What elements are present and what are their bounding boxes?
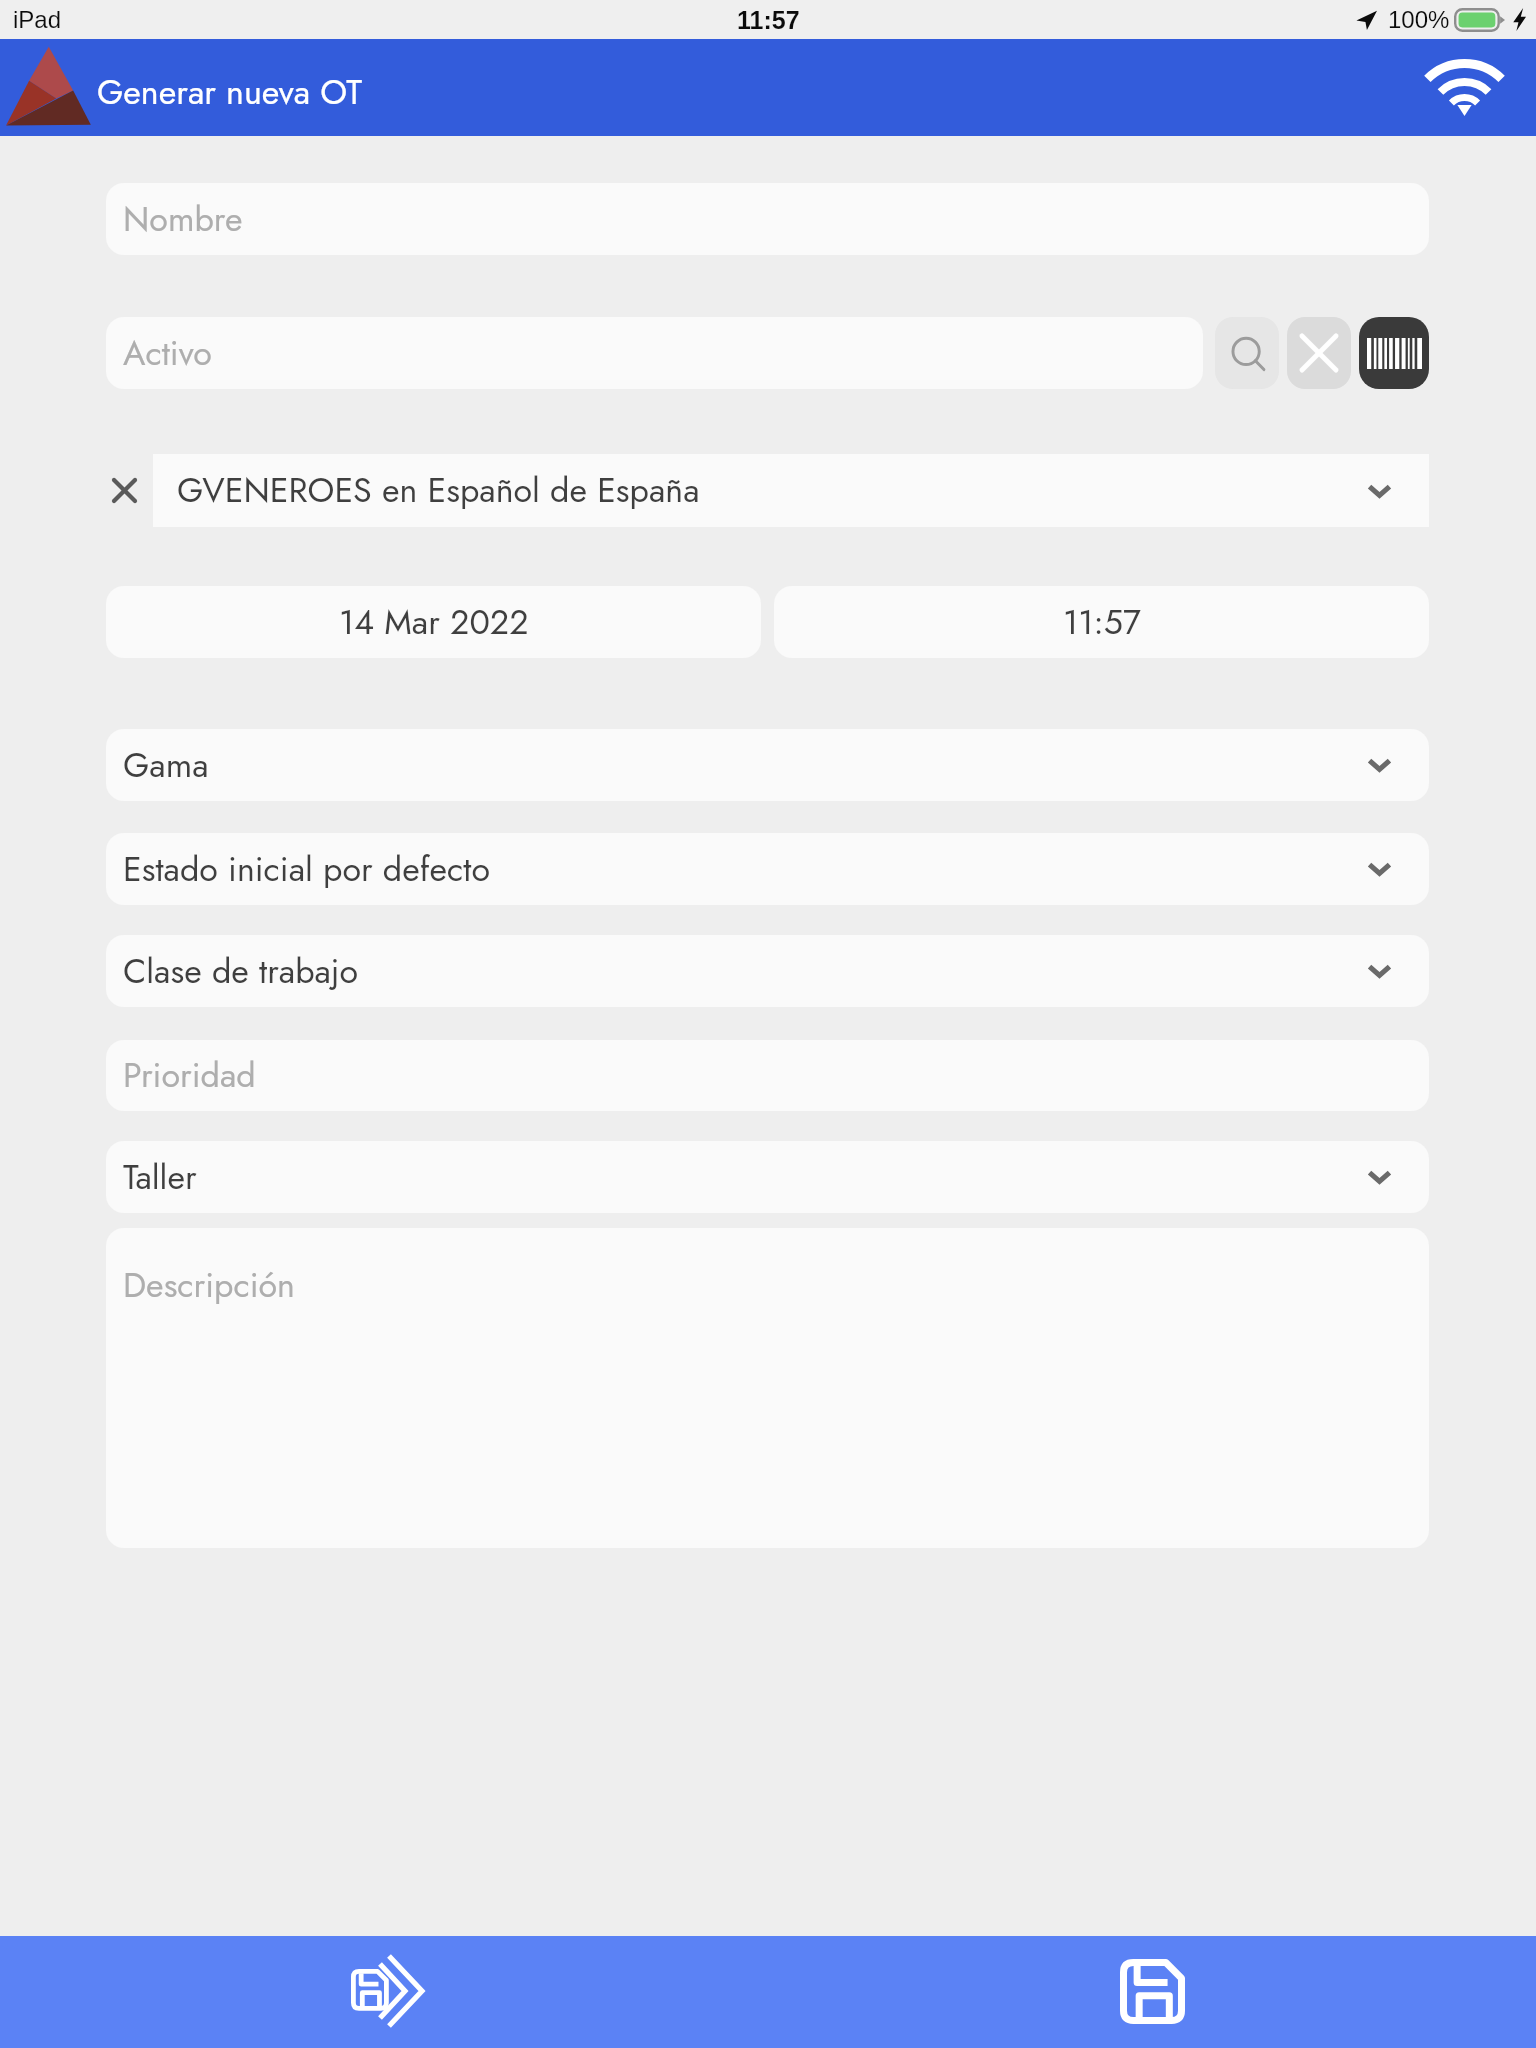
staticText: Activo [123, 329, 212, 378]
button[interactable]: 14 Mar 2022 [106, 586, 761, 658]
button[interactable]: Descripción [106, 1228, 1429, 1548]
staticText: Clase de trabajo [123, 947, 358, 996]
button[interactable]: Taller [106, 1141, 1429, 1213]
button[interactable]: Activo [106, 317, 1203, 389]
button[interactable]: Prioridad [106, 1040, 1429, 1111]
button[interactable]: Gama [106, 729, 1429, 801]
button[interactable]: 11:57 [774, 586, 1429, 658]
staticText: Prioridad [123, 1051, 256, 1100]
button[interactable]: Guardar y continuar [337, 1942, 437, 2042]
staticText: GVENEROES en Español de España [177, 466, 700, 515]
button[interactable]: Escanear codigo de barras [1359, 317, 1429, 389]
staticText: Descripción [123, 1261, 295, 1310]
button[interactable]: Clase de trabajo [106, 935, 1429, 1007]
staticText: 14 Mar 2022 [339, 598, 529, 647]
button[interactable]: GVENEROES en Español de España [153, 454, 1429, 527]
staticText: iPad [13, 6, 62, 33]
other: Wi-Fi [1424, 59, 1505, 116]
staticText: Generar nueva OT [97, 68, 362, 117]
button[interactable]: Buscar [1215, 317, 1279, 389]
staticText: Estado inicial por defecto [123, 845, 490, 894]
button[interactable]: Estado inicial por defecto [106, 833, 1429, 905]
staticText: 11:57 [737, 6, 800, 34]
staticText: 100% [1388, 6, 1450, 33]
staticText: Gama [123, 741, 209, 790]
button[interactable]: Nombre [106, 183, 1429, 255]
staticText: 11:57 [1063, 598, 1141, 647]
button[interactable]: Borrar [1287, 317, 1351, 389]
button[interactable]: Guardar [1110, 1949, 1195, 2034]
staticText: Taller [123, 1153, 197, 1202]
staticText: Nombre [123, 195, 243, 244]
button[interactable]: Quitar seleccion [106, 454, 142, 527]
